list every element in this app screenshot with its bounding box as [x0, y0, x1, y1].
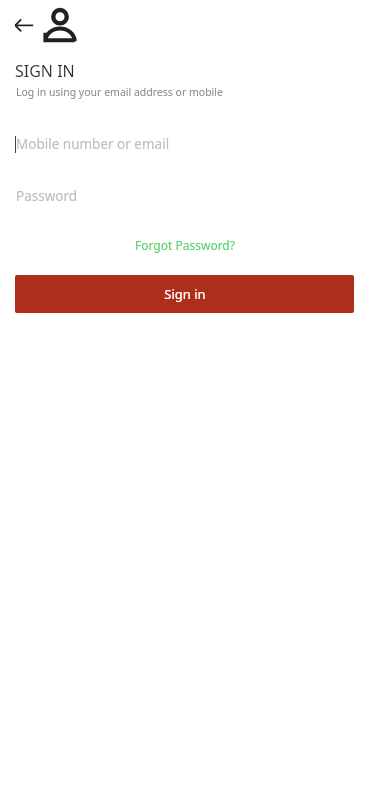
staticText: Forgot Password?: [135, 237, 235, 253]
button[interactable]: Back: [12, 13, 36, 37]
button[interactable]: Forgot Password?: [129, 235, 241, 255]
staticText: Password: [16, 187, 78, 205]
staticText: Mobile number or email: [16, 135, 170, 153]
button[interactable]: Password: [0, 183, 369, 209]
staticText: SIGN IN: [15, 60, 75, 82]
staticText: Sign in: [164, 285, 206, 303]
button[interactable]: Sign in: [15, 275, 354, 313]
button[interactable]: Mobile number or email: [0, 131, 369, 157]
other: Account: [40, 6, 80, 46]
staticText: Log in using your email address or mobil…: [16, 85, 223, 99]
